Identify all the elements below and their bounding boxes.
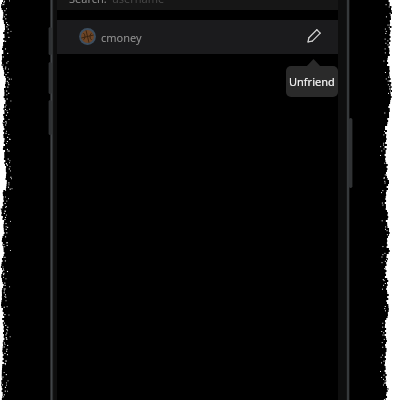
staticText: cmoney — [101, 30, 142, 45]
button[interactable]: cmoney — [57, 20, 338, 54]
button[interactable] — [57, 0, 338, 10]
button[interactable] — [306, 30, 320, 44]
staticText: username — [112, 0, 165, 6]
staticText: Search: — [69, 0, 107, 6]
button[interactable]: Unfriend — [286, 66, 338, 97]
staticText: Unfriend — [289, 74, 335, 89]
